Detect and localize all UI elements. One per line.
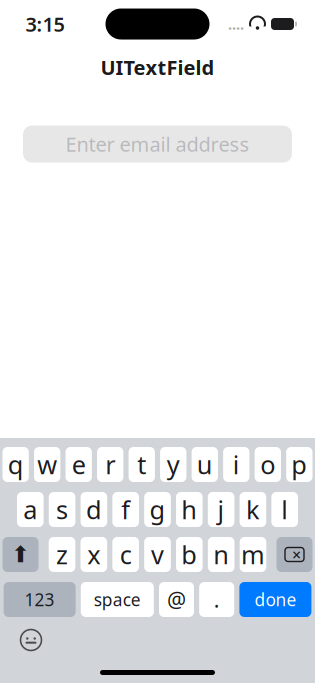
staticText: j (218, 493, 225, 526)
button[interactable]: Delete (276, 537, 312, 572)
button[interactable]: c (112, 537, 139, 572)
staticText: ⬆ (11, 542, 30, 567)
staticText: h (181, 493, 197, 526)
staticText: t (137, 448, 146, 481)
staticText: w (37, 448, 57, 481)
staticText: m (241, 538, 265, 571)
button[interactable]: o (255, 447, 281, 482)
staticText: 3:15 (25, 11, 64, 37)
staticText: Enter email address (65, 131, 249, 157)
button[interactable]: w (34, 447, 60, 482)
staticText: n (213, 538, 229, 571)
button[interactable]: h (176, 492, 203, 527)
button[interactable]: a (17, 492, 44, 527)
staticText: done (254, 588, 296, 611)
button[interactable]: g (144, 492, 171, 527)
staticText: p (291, 448, 307, 481)
staticText: e (72, 448, 86, 481)
button[interactable]: u (192, 447, 218, 482)
button[interactable]: b (176, 537, 203, 572)
staticText: g (149, 493, 165, 526)
staticText: c (120, 538, 132, 571)
staticText: k (246, 493, 260, 526)
button[interactable]: p (286, 447, 312, 482)
staticText: u (197, 448, 213, 481)
staticText: × (292, 544, 301, 565)
staticText: .... (228, 14, 244, 34)
button[interactable]: l (271, 492, 298, 527)
staticText: r (105, 448, 115, 481)
button[interactable]: t (129, 447, 155, 482)
button[interactable]: 123 (4, 582, 76, 617)
button[interactable]: q (2, 447, 29, 482)
staticText: q (8, 448, 24, 481)
staticText: z (56, 538, 68, 571)
staticText: l (281, 493, 288, 526)
staticText: @ (167, 585, 186, 614)
staticText: v (151, 538, 164, 571)
button[interactable]: m (240, 537, 266, 572)
staticText: . (214, 585, 220, 614)
staticText: f (121, 493, 130, 526)
button[interactable]: j (208, 492, 234, 527)
button[interactable]: y (160, 447, 186, 482)
button[interactable]: Shift (2, 537, 38, 572)
button[interactable]: n (208, 537, 234, 572)
button[interactable]: d (81, 492, 107, 527)
button[interactable]: r (97, 447, 123, 482)
staticText: d (86, 493, 102, 526)
button[interactable]: . (199, 582, 234, 617)
button[interactable]: v (144, 537, 171, 572)
staticText: o (260, 448, 275, 481)
button[interactable]: k (240, 492, 266, 527)
staticText: UITextField (100, 54, 214, 81)
staticText: space (94, 588, 141, 611)
staticText: i (233, 448, 240, 481)
staticText: s (56, 493, 68, 526)
button[interactable]: e (65, 447, 92, 482)
button[interactable]: Emoji (14, 625, 48, 655)
button[interactable]: s (49, 492, 75, 527)
button[interactable]: done (239, 582, 311, 617)
button[interactable]: x (80, 537, 107, 572)
staticText: b (181, 538, 197, 571)
staticText: a (23, 493, 37, 526)
staticText: y (167, 448, 180, 481)
staticText: x (87, 538, 100, 571)
button[interactable]: i (223, 447, 249, 482)
button[interactable]: Enter email address (23, 126, 292, 163)
button[interactable]: @ (159, 582, 194, 617)
staticText: 123 (25, 588, 55, 611)
button[interactable]: f (112, 492, 139, 527)
button[interactable]: z (49, 537, 75, 572)
button[interactable]: space (81, 582, 154, 617)
